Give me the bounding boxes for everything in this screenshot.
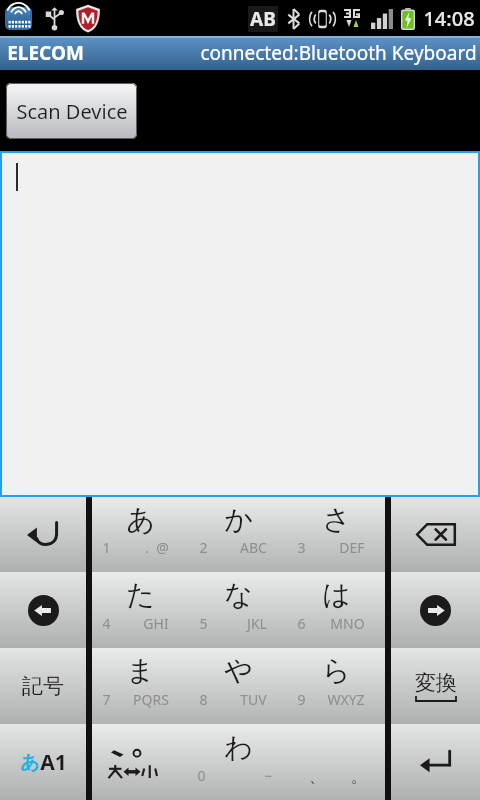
staticText: わ — [224, 730, 253, 765]
staticText: ま — [126, 653, 155, 688]
button[interactable]: あ — [0, 724, 86, 800]
staticText: JKL — [247, 614, 267, 633]
staticText: 変換 — [415, 670, 457, 696]
button[interactable]: 記号 — [0, 648, 86, 724]
staticText: あ — [126, 502, 155, 537]
staticText: . @ — [145, 538, 169, 557]
staticText: connected:Bluetooth Keyboard — [200, 40, 477, 66]
staticText: さ — [322, 502, 351, 537]
staticText: PQRS — [133, 690, 169, 709]
staticText: 0 — [197, 766, 206, 785]
staticText: 7 — [102, 690, 111, 709]
button[interactable]: Punctuation — [287, 724, 385, 800]
button[interactable]: わ — [189, 724, 287, 800]
staticText: ら — [322, 653, 351, 688]
staticText: 5 — [199, 614, 208, 633]
button[interactable]: Enter — [391, 724, 480, 800]
staticText: た — [126, 577, 155, 612]
staticText: 8 — [199, 690, 208, 709]
staticText: あ — [20, 751, 40, 775]
button[interactable]: は — [287, 572, 385, 648]
button[interactable]: や — [189, 648, 287, 724]
button[interactable]: Cursor left — [0, 572, 86, 648]
staticText: は — [322, 577, 351, 612]
staticText: 6 — [297, 614, 306, 633]
staticText: ELECOM — [7, 40, 84, 66]
button[interactable] — [2, 153, 478, 495]
staticText: 9 — [297, 690, 306, 709]
button[interactable]: Scan Device — [6, 83, 137, 139]
staticText: や — [224, 653, 253, 688]
staticText: GHI — [143, 614, 169, 633]
staticText: A1 — [40, 748, 67, 777]
staticText: 14:08 — [423, 5, 475, 32]
staticText: WXYZ — [327, 690, 365, 709]
staticText: 4 — [102, 614, 111, 633]
staticText: AB — [250, 6, 276, 32]
button[interactable]: ら — [287, 648, 385, 724]
button[interactable]: Undo — [0, 497, 86, 572]
staticText: 、 — [309, 767, 325, 787]
button[interactable]: あ — [92, 497, 189, 572]
staticText: MNO — [330, 614, 365, 633]
staticText: TUV — [240, 690, 267, 709]
button[interactable]: 変換 — [391, 648, 480, 724]
staticText: − — [264, 766, 273, 785]
staticText: か — [224, 502, 253, 537]
staticText: 1 — [102, 538, 111, 557]
staticText: な — [224, 577, 253, 612]
staticText: 記号 — [22, 673, 64, 699]
button[interactable]: Dakuten and size toggle — [92, 724, 189, 800]
button[interactable]: Cursor right — [391, 572, 480, 648]
staticText: Scan Device — [16, 98, 128, 125]
staticText: 2 — [199, 538, 208, 557]
button[interactable]: Delete — [391, 497, 480, 572]
staticText: ABC — [240, 538, 267, 557]
staticText: 3 — [297, 538, 306, 557]
staticText: DEF — [339, 538, 365, 557]
button[interactable]: か — [189, 497, 287, 572]
button[interactable]: な — [189, 572, 287, 648]
button[interactable]: た — [92, 572, 189, 648]
staticText: 。 — [351, 767, 367, 787]
button[interactable]: ま — [92, 648, 189, 724]
button[interactable]: さ — [287, 497, 385, 572]
